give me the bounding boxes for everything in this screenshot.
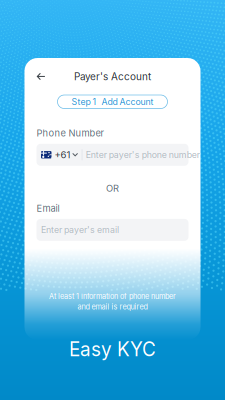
staticText: At least 1 information of phone number (49, 292, 176, 301)
button[interactable]: Back (36, 67, 58, 85)
staticText: and email is required (77, 302, 147, 311)
staticText: Step 1 (71, 96, 96, 107)
staticText: Enter payer's email (41, 225, 119, 235)
staticText: Phone Number (36, 127, 104, 139)
staticText: Email (36, 203, 59, 214)
staticText: Add Account (101, 96, 153, 107)
staticText: Payer's Account (74, 70, 151, 83)
staticText: Easy KYC (69, 338, 156, 361)
staticText: +61 (54, 149, 70, 161)
staticText: OR (106, 183, 119, 194)
button[interactable]: Step 1 (57, 95, 167, 108)
staticText: Enter payer's phone number (86, 149, 200, 160)
